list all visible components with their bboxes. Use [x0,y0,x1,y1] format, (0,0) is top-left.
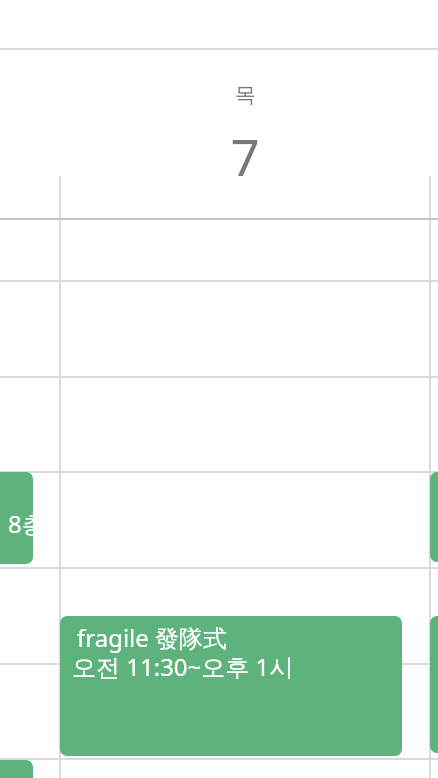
staticText: 8층 [8,507,33,540]
button[interactable]: 목요일 7일 [60,0,430,176]
staticText: fragile 發隊式 [77,621,228,654]
button[interactable]: 다음 날짜 일정 [430,616,438,753]
staticText: 7 [230,122,260,176]
button[interactable]: fragile 發隊式 [60,616,402,756]
staticText: 목 [235,82,256,108]
button[interactable]: 이전 날짜 일정 8층 [0,472,33,564]
button[interactable]: 이전 날짜 일정 [0,760,33,778]
button[interactable]: 다음 날짜 일정 [430,472,438,562]
staticText: 오전 11:30~오후 1시 [72,650,294,683]
